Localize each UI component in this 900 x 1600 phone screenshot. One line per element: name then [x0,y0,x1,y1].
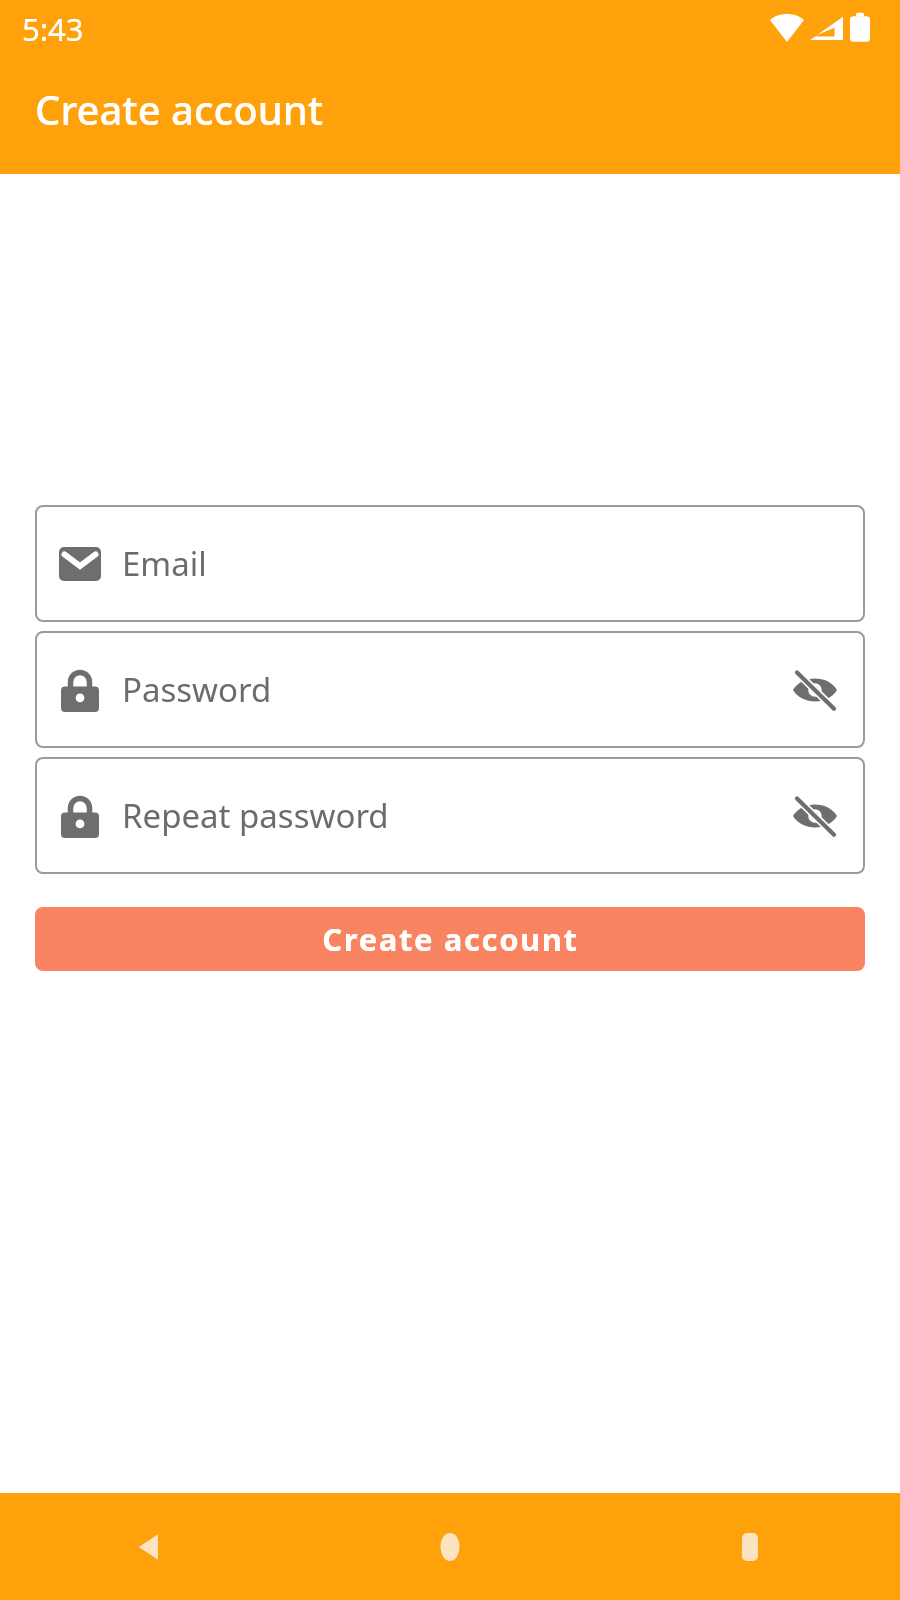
staticText: Email [122,541,843,586]
button[interactable]: Email [35,505,865,622]
button[interactable]: Home [300,1493,600,1600]
staticText: Create account [322,918,579,960]
button[interactable]: Back [0,1493,300,1600]
staticText: 5:43 [22,8,84,50]
button[interactable]: Toggle password visibility [787,788,843,844]
staticText: Create account [35,82,324,136]
staticText: Password [122,667,787,712]
button[interactable]: Toggle password visibility [787,662,843,718]
staticText: Repeat password [122,793,787,838]
button[interactable]: Create account [35,907,865,971]
button[interactable]: Password [35,631,865,748]
button[interactable]: Recent apps [600,1493,900,1600]
button[interactable]: Repeat password [35,757,865,874]
